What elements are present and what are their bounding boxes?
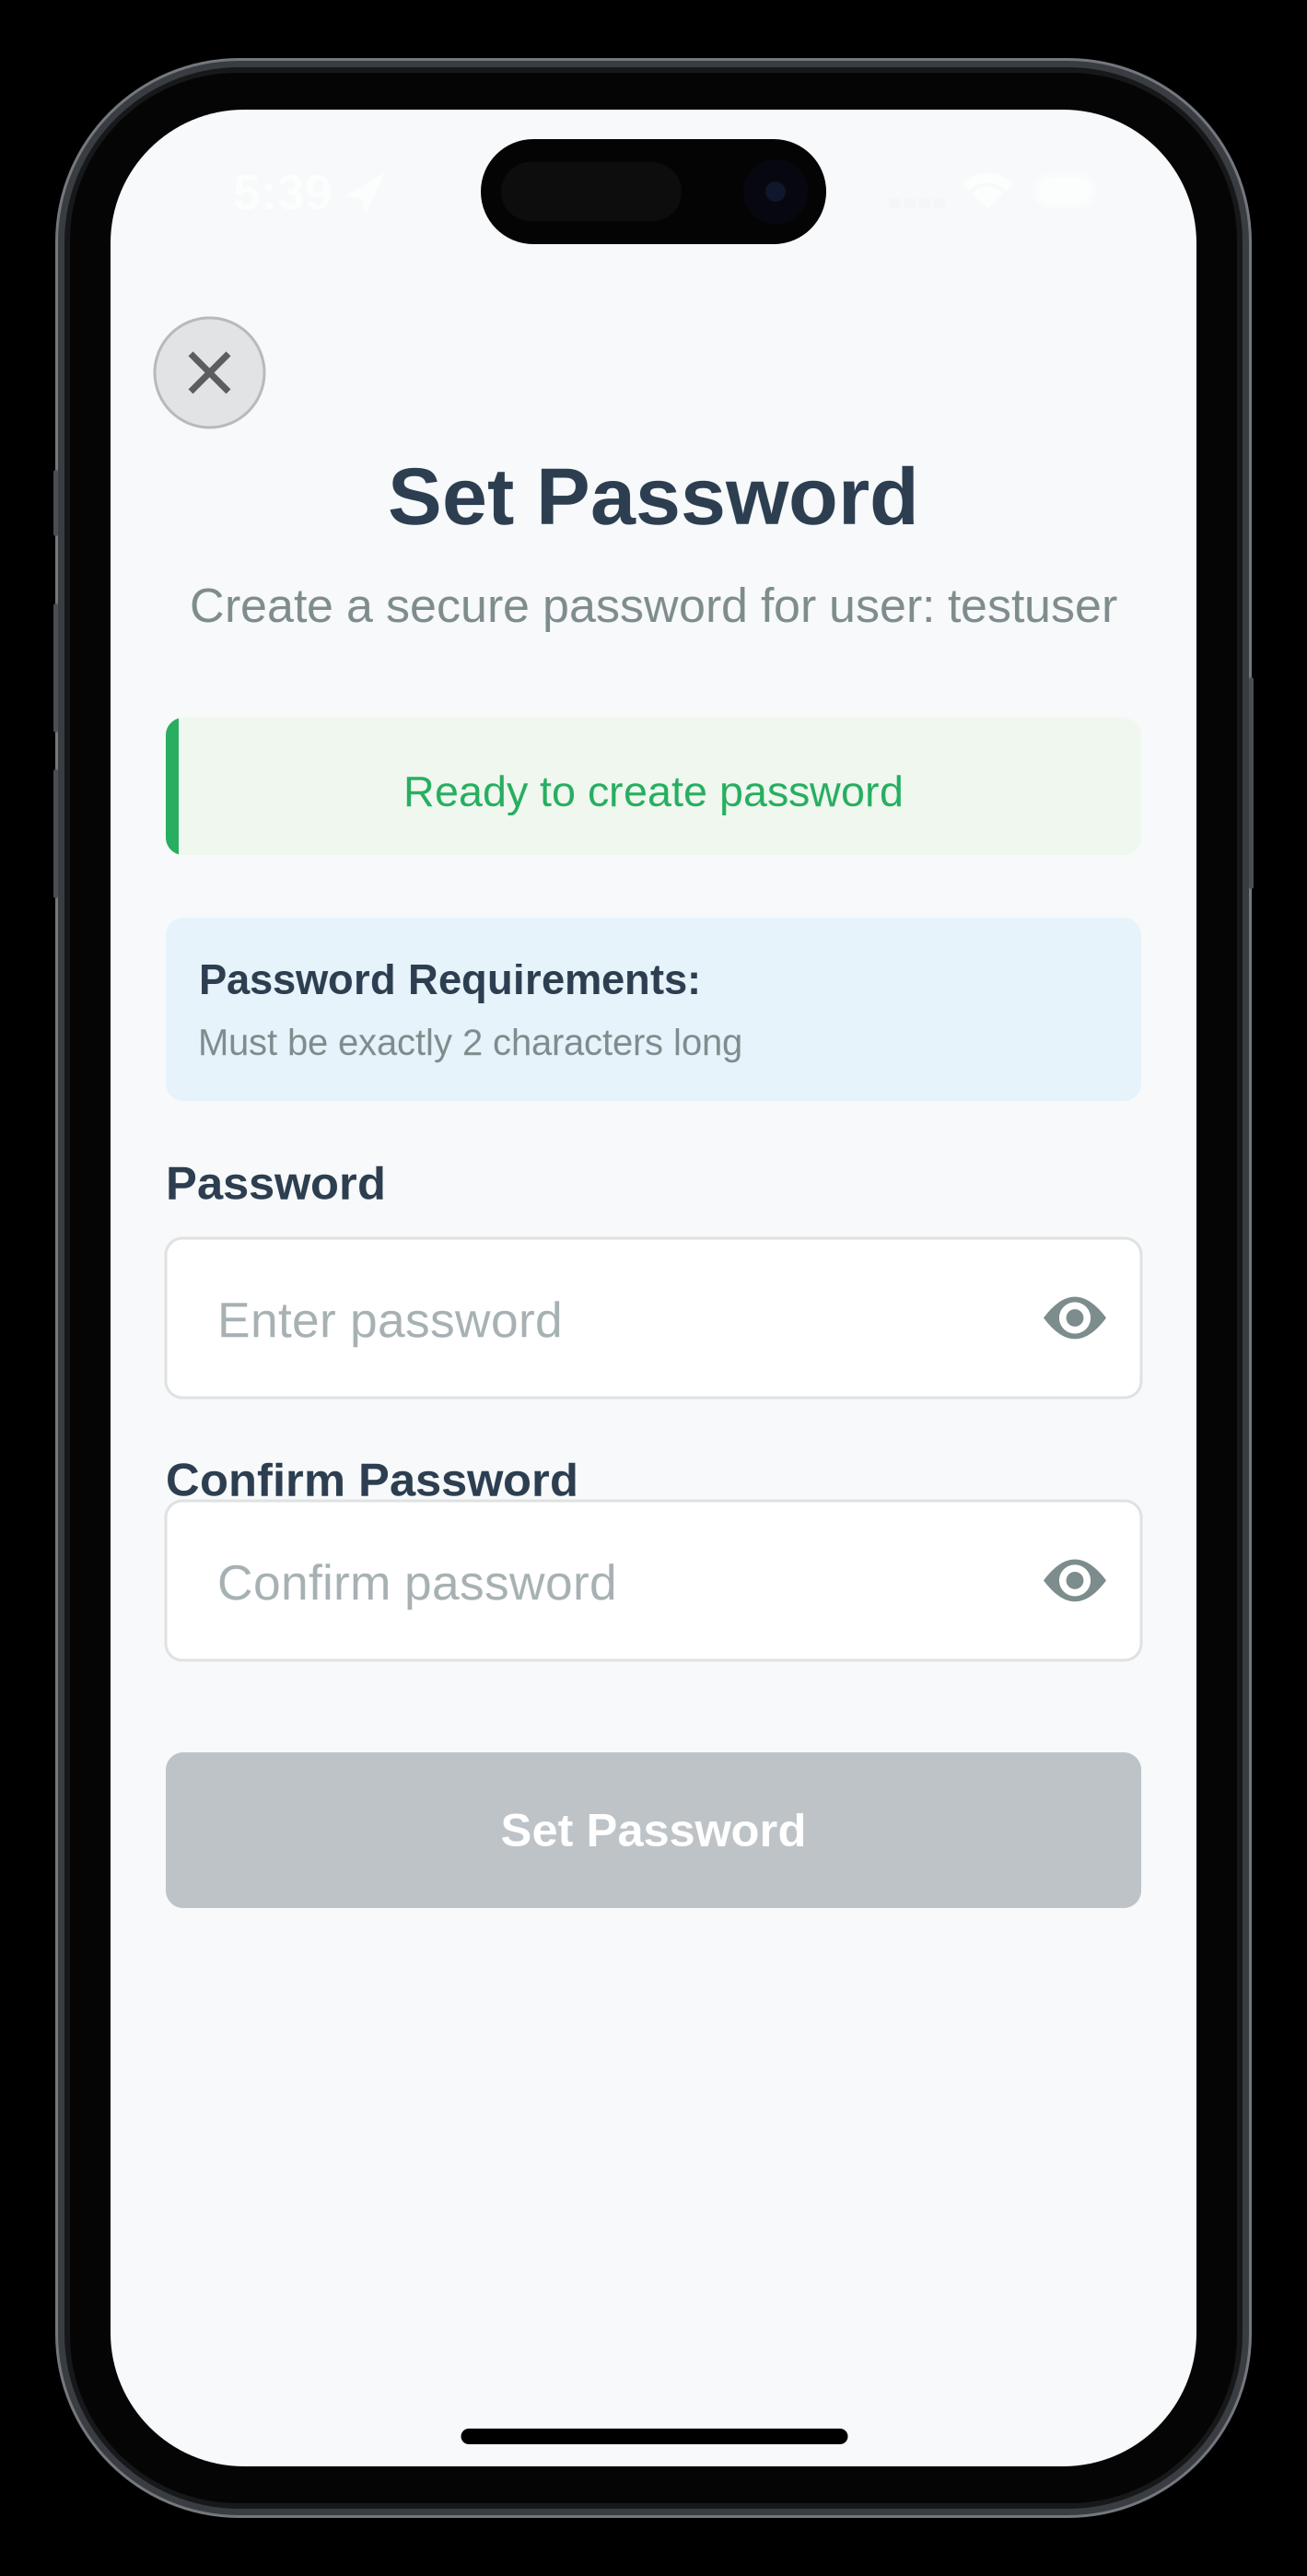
staticText: Ready to create password xyxy=(403,767,904,815)
staticText: Create a secure password for user: testu… xyxy=(190,579,1117,632)
button[interactable]: Close xyxy=(155,318,264,427)
button[interactable]: Show confirm password xyxy=(166,1501,1141,1660)
staticText: Must be exactly 2 characters long xyxy=(198,1022,742,1063)
staticText: Password xyxy=(166,1157,386,1209)
staticText: Confirm Password xyxy=(166,1454,578,1506)
button[interactable]: Show password xyxy=(166,1238,1141,1398)
staticText: Set Password xyxy=(388,451,919,541)
staticText: Confirm password xyxy=(217,1555,617,1610)
staticText: Set Password xyxy=(501,1804,806,1856)
button[interactable]: Set Password xyxy=(166,1752,1141,1908)
staticText: Enter password xyxy=(217,1293,563,1348)
staticText: Password Requirements: xyxy=(199,956,701,1003)
